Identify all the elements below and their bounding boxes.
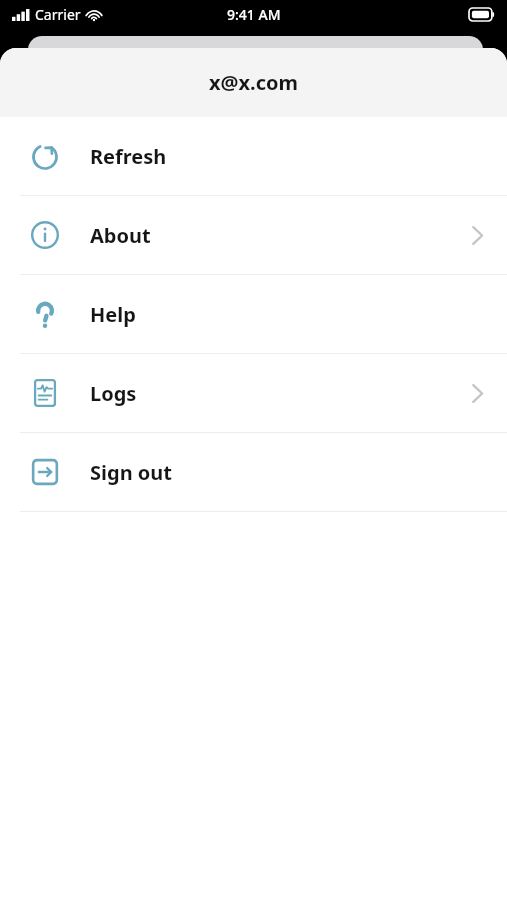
button[interactable]: Sign out bbox=[0, 433, 507, 511]
staticText: Carrier bbox=[35, 5, 81, 24]
staticText: Logs bbox=[90, 380, 137, 407]
staticText: x@x.com bbox=[209, 69, 299, 96]
staticText: 9:41 AM bbox=[227, 5, 281, 24]
staticText: About bbox=[90, 222, 151, 249]
button[interactable]: Refresh bbox=[0, 117, 507, 195]
staticText: Help bbox=[90, 301, 136, 328]
staticText: Sign out bbox=[90, 459, 173, 486]
button[interactable]: About bbox=[0, 196, 507, 274]
button[interactable]: Logs bbox=[0, 354, 507, 432]
staticText: Refresh bbox=[90, 143, 167, 170]
button[interactable]: Help bbox=[0, 275, 507, 353]
